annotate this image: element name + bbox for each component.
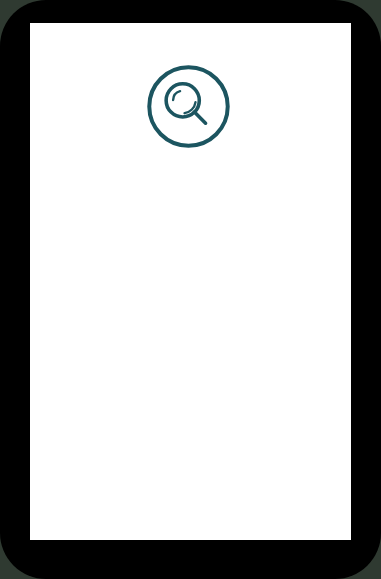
- button[interactable]: Search: [146, 64, 231, 149]
